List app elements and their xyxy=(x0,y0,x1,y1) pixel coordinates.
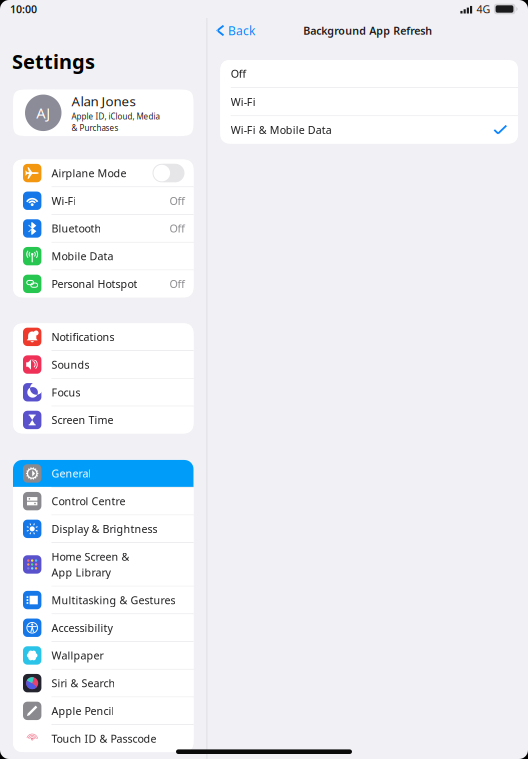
button[interactable]: Apple Pencil xyxy=(13,697,193,725)
staticText: Wi-Fi xyxy=(231,95,256,109)
staticText: 4G xyxy=(476,2,490,16)
staticText: Off xyxy=(231,67,246,81)
staticText: Personal Hotspot xyxy=(51,277,137,291)
staticText: Background App Refresh xyxy=(303,23,432,38)
staticText: Airplane Mode xyxy=(51,166,126,180)
staticText: Wi-Fi & Mobile Data xyxy=(231,123,332,137)
staticText: Screen Time xyxy=(51,413,113,427)
button[interactable]: Home Screen & xyxy=(13,543,193,587)
button[interactable]: AJ xyxy=(13,90,193,136)
button[interactable]: Siri & Search xyxy=(13,670,193,697)
button[interactable]: Touch ID & Passcode xyxy=(13,725,193,752)
staticText: & Purchases xyxy=(71,123,118,133)
staticText: Control Centre xyxy=(51,494,125,508)
button[interactable]: Off xyxy=(220,60,518,88)
staticText: Sounds xyxy=(51,357,89,372)
staticText: Focus xyxy=(51,385,80,399)
staticText: App Library xyxy=(51,565,110,579)
staticText: Apple Pencil xyxy=(51,704,114,718)
staticText: General xyxy=(51,466,91,481)
staticText: Bluetooth xyxy=(51,221,101,236)
button[interactable]: Mobile Data xyxy=(13,243,193,270)
button[interactable]: Wallpaper xyxy=(13,642,193,670)
staticText: Settings xyxy=(12,48,95,75)
button[interactable]: Display & Brightness xyxy=(13,515,193,543)
staticText: Mobile Data xyxy=(51,249,113,263)
button[interactable]: General xyxy=(13,460,193,488)
button[interactable]: Focus xyxy=(13,379,193,406)
staticText: Off xyxy=(169,277,184,291)
staticText: Wi-Fi xyxy=(51,194,76,208)
staticText: Touch ID & Passcode xyxy=(51,731,156,746)
staticText: 10:00 xyxy=(10,2,37,16)
staticText: Off xyxy=(169,221,184,236)
button[interactable]: Airplane Mode xyxy=(13,160,193,187)
staticText: Accessibility xyxy=(51,621,112,635)
button[interactable]: Bluetooth xyxy=(13,215,193,243)
button[interactable]: Personal Hotspot xyxy=(13,270,193,297)
button[interactable]: Control Centre xyxy=(13,488,193,515)
button[interactable]: Wi-Fi xyxy=(220,88,518,116)
button[interactable]: Wi-Fi & Mobile Data xyxy=(220,116,518,144)
button[interactable]: Notifications xyxy=(13,323,193,351)
button[interactable]: Wi-Fi xyxy=(13,187,193,215)
button[interactable]: Screen Time xyxy=(13,406,193,433)
staticText: AJ xyxy=(36,103,50,123)
staticText: Display & Brightness xyxy=(51,522,157,536)
staticText: Off xyxy=(169,194,184,208)
staticText: Alan Jones xyxy=(71,92,135,110)
staticText: Multitasking & Gestures xyxy=(51,593,175,607)
staticText: Notifications xyxy=(51,330,114,344)
staticText: Wallpaper xyxy=(51,648,103,663)
staticText: Back xyxy=(228,22,255,38)
staticText: Siri & Search xyxy=(51,676,115,690)
staticText: Apple ID, iCloud, Media xyxy=(71,111,159,122)
button[interactable]: Accessibility xyxy=(13,614,193,642)
button[interactable]: Multitasking & Gestures xyxy=(13,587,193,614)
button[interactable]: Back xyxy=(207,18,261,42)
staticText: Home Screen & xyxy=(51,549,129,564)
button[interactable]: Sounds xyxy=(13,351,193,379)
